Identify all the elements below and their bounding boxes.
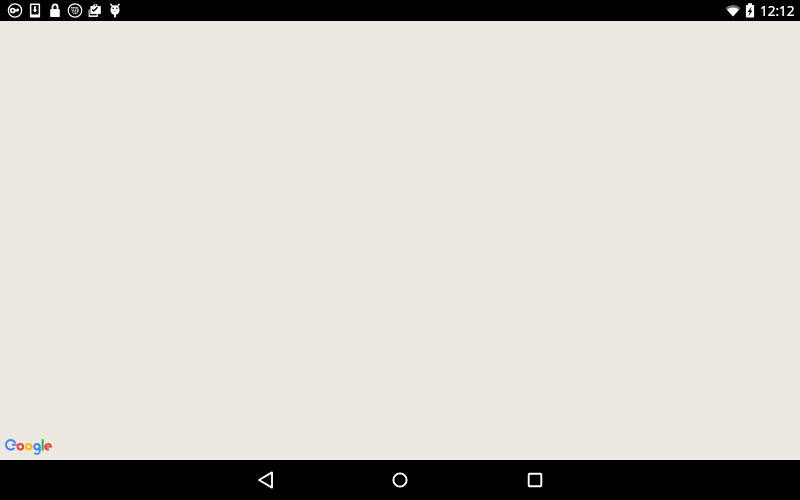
button[interactable]: Google (5, 439, 53, 457)
button[interactable]: Home (360, 460, 440, 500)
button[interactable]: Back (226, 460, 306, 500)
button[interactable]: Recent apps (495, 460, 575, 500)
staticText: 12:12 (760, 2, 795, 20)
